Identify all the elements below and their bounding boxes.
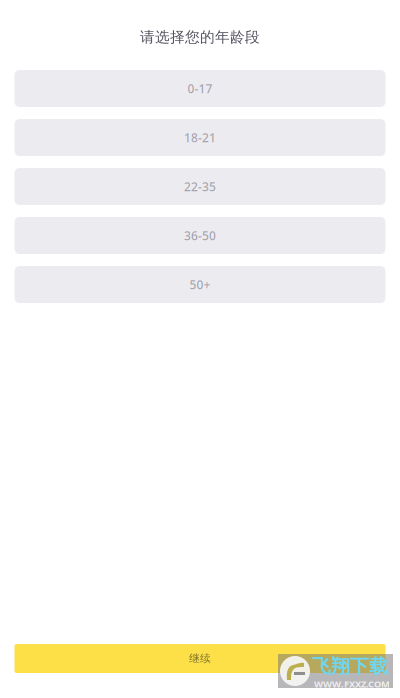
button[interactable]: 36-50 <box>14 217 385 254</box>
staticText: 36-50 <box>184 227 216 243</box>
button[interactable]: 继续 <box>14 644 385 673</box>
staticText: 请选择您的年龄段 <box>140 28 260 46</box>
staticText: 22-35 <box>184 178 216 194</box>
staticText: 继续 <box>189 652 211 665</box>
button[interactable]: 50+ <box>14 266 385 303</box>
staticText: 50+ <box>189 276 210 292</box>
button[interactable]: 0-17 <box>14 70 385 107</box>
staticText: 18-21 <box>184 129 216 145</box>
button[interactable]: 22-35 <box>14 168 385 205</box>
button[interactable]: 18-21 <box>14 119 385 156</box>
staticText: 0-17 <box>187 80 212 96</box>
